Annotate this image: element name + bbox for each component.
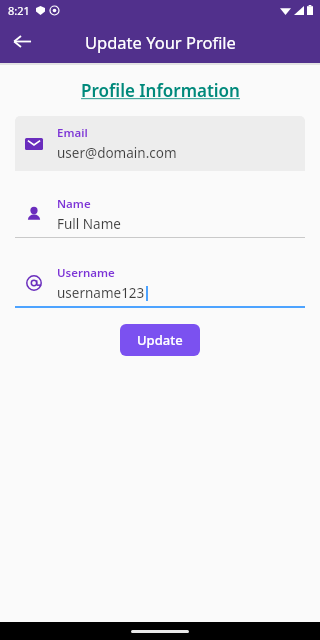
staticText: user@domain.com xyxy=(57,144,177,162)
staticText: Update xyxy=(137,331,183,349)
staticText: Email xyxy=(57,125,88,141)
staticText: Update Your Profile xyxy=(85,31,236,53)
button[interactable]: Profile Information xyxy=(81,79,240,102)
button[interactable]: Back xyxy=(0,20,44,63)
button[interactable]: Username xyxy=(15,260,305,308)
button[interactable]: Name xyxy=(15,191,305,238)
staticText: Username xyxy=(57,265,115,281)
button[interactable]: Update xyxy=(120,324,200,356)
staticText: Name xyxy=(57,196,91,212)
staticText: username123 xyxy=(57,284,145,302)
staticText: 8:21 xyxy=(8,3,30,18)
staticText: Full Name xyxy=(57,215,121,233)
button[interactable]: Email xyxy=(15,116,305,171)
